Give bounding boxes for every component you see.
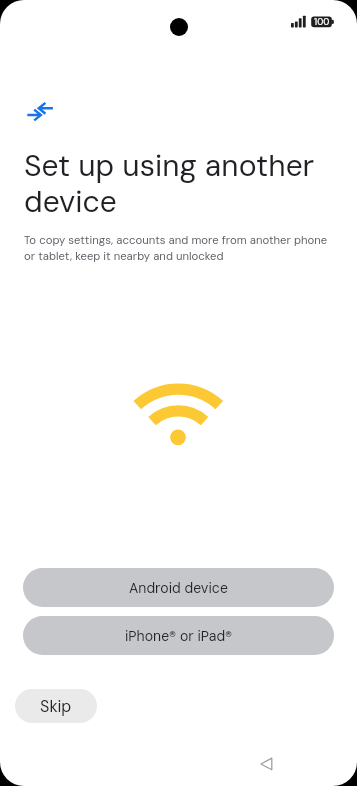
button[interactable]: Back — [252, 750, 280, 778]
staticText: 100 — [314, 16, 330, 28]
staticText: Set up using another device — [24, 146, 326, 221]
staticText: Skip — [40, 696, 72, 717]
other: Transfer data — [26, 100, 54, 122]
staticText: To copy settings, accounts and more from… — [24, 233, 336, 264]
button[interactable]: Skip — [15, 689, 97, 723]
button[interactable]: Android device — [23, 568, 334, 607]
staticText: iPhone® or iPad® — [125, 627, 233, 645]
button[interactable]: iPhone® or iPad® — [23, 616, 334, 655]
staticText: Android device — [129, 579, 228, 597]
